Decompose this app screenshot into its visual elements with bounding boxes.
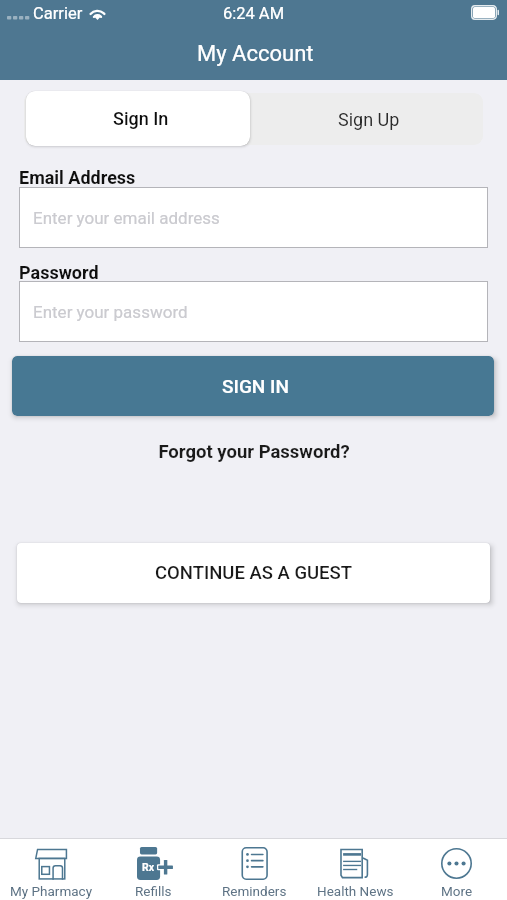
button[interactable]: Rx: [102, 839, 204, 900]
staticText: My Account: [197, 41, 314, 67]
button[interactable]: Sign Up: [250, 93, 483, 145]
button[interactable]: Health News: [305, 839, 406, 900]
staticText: Forgot your Password?: [158, 441, 350, 463]
button[interactable]: More: [406, 839, 507, 900]
button[interactable]: Reminders: [204, 839, 305, 900]
staticText: Reminders: [222, 883, 287, 899]
staticText: SIGN IN: [222, 375, 289, 397]
staticText: Refills: [135, 883, 172, 899]
staticText: More: [441, 883, 473, 899]
button[interactable]: Sign In: [26, 91, 250, 146]
staticText: 6:24 AM: [0, 4, 507, 23]
staticText: Enter your password: [33, 302, 188, 322]
button[interactable]: [24, 93, 250, 145]
button[interactable]: CONTINUE AS A GUEST: [17, 543, 490, 603]
button[interactable]: Enter your email address: [19, 187, 488, 248]
staticText: Rx: [142, 861, 155, 873]
staticText: Carrier: [33, 4, 83, 23]
staticText: My Pharmacy: [10, 883, 93, 899]
button[interactable]: SIGN IN: [12, 356, 494, 416]
button[interactable]: Forgot your Password?: [0, 441, 507, 463]
staticText: CONTINUE AS A GUEST: [155, 562, 353, 584]
staticText: Sign In: [113, 108, 169, 129]
staticText: Sign Up: [338, 109, 400, 130]
staticText: Enter your email address: [33, 208, 220, 228]
button[interactable]: Enter your password: [19, 281, 488, 342]
staticText: Health News: [317, 883, 394, 899]
staticText: Password: [19, 262, 99, 283]
button[interactable]: My Pharmacy: [0, 839, 102, 900]
staticText: Email Address: [19, 167, 136, 188]
